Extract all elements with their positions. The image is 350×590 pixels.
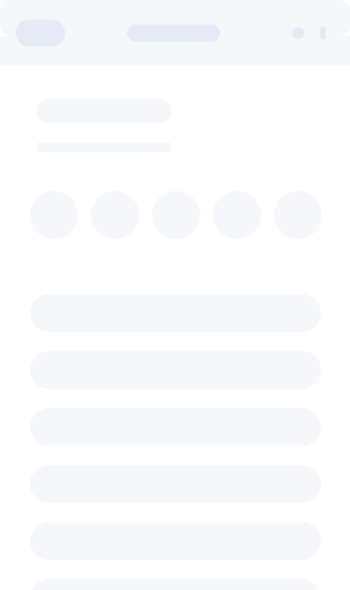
button[interactable]: Avatar placeholder xyxy=(30,191,78,239)
button[interactable]: Avatar placeholder xyxy=(213,191,261,239)
button[interactable]: Avatar placeholder xyxy=(91,191,139,239)
button[interactable]: Back xyxy=(16,19,65,46)
button[interactable]: Avatar placeholder xyxy=(152,191,200,239)
button[interactable]: Search xyxy=(292,27,304,39)
button[interactable]: Avatar placeholder xyxy=(274,191,322,239)
button[interactable]: More xyxy=(320,26,326,39)
